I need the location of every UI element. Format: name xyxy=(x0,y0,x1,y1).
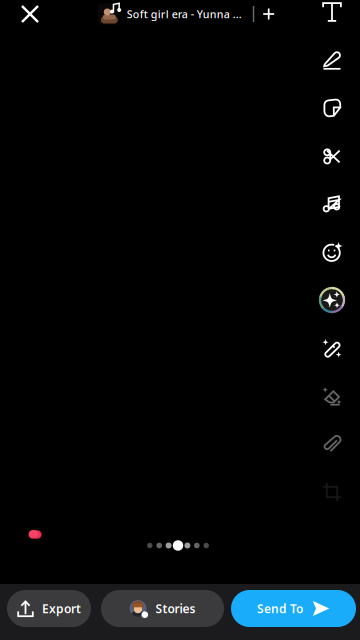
button[interactable]: Send To xyxy=(231,590,356,627)
button[interactable]: Crop xyxy=(310,468,354,516)
button[interactable]: AI effects xyxy=(310,276,354,324)
button[interactable]: Export xyxy=(7,590,91,627)
button[interactable]: Cutout xyxy=(310,132,354,180)
button[interactable]: Draw xyxy=(310,36,354,84)
staticText: Send To xyxy=(257,600,303,616)
button[interactable]: Stickers xyxy=(310,84,354,132)
button[interactable]: Magic xyxy=(310,324,354,372)
button[interactable]: Soundtrack: Soft girl era by Yunna xyxy=(98,1,274,27)
button[interactable]: Emoji xyxy=(310,228,354,276)
staticText: Export xyxy=(42,600,81,616)
button[interactable]: Attach link xyxy=(310,420,354,468)
button[interactable]: Sounds xyxy=(310,180,354,228)
button[interactable]: Stories xyxy=(101,590,224,627)
staticText: Soft girl era - Yunna ... xyxy=(127,7,242,21)
button[interactable]: Magic eraser xyxy=(310,372,354,420)
button[interactable]: Text xyxy=(310,0,354,36)
button[interactable]: Close xyxy=(7,1,53,27)
staticText: Stories xyxy=(155,600,195,616)
